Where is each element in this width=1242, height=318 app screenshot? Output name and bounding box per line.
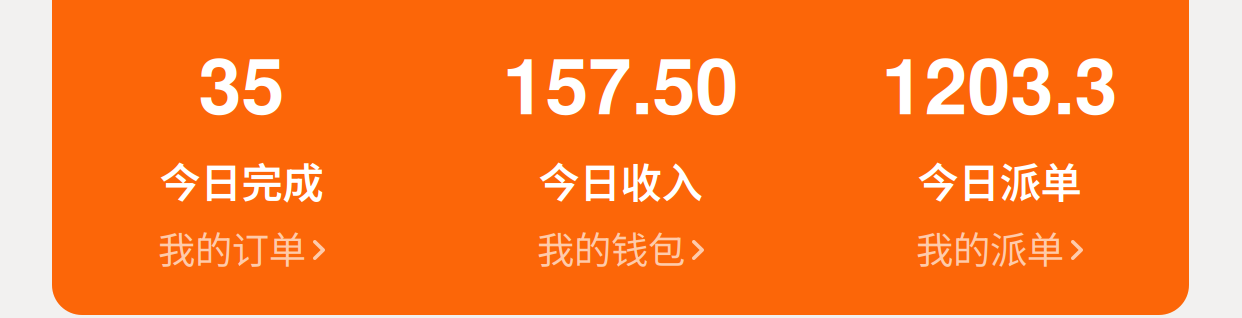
staticText: 35 xyxy=(198,27,284,138)
staticText: 我的钱包 xyxy=(537,220,685,275)
staticText: 我的派单 xyxy=(916,220,1064,275)
button[interactable]: 今日派单 1203.3，我的派单 xyxy=(810,28,1189,271)
staticText: 今日收入 xyxy=(538,150,702,210)
staticText: 今日完成 xyxy=(159,150,323,210)
staticText: 1203.3 xyxy=(881,27,1117,138)
staticText: 157.50 xyxy=(502,27,738,138)
staticText: 今日派单 xyxy=(917,150,1081,210)
button[interactable]: 今日完成 35，我的订单 xyxy=(52,28,431,271)
staticText: 我的订单 xyxy=(158,220,306,275)
button[interactable]: 今日收入 157.50，我的钱包 xyxy=(431,28,810,271)
